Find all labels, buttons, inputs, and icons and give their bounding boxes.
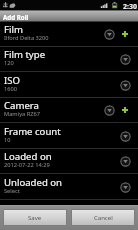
staticText: 1600 (4, 85, 18, 93)
staticText: 2012-07-22 14:29 (4, 161, 50, 169)
button[interactable]: Save (4, 210, 66, 225)
button[interactable]: Add new (122, 31, 128, 37)
button[interactable]: Open list (120, 182, 131, 193)
staticText: Film (4, 23, 23, 36)
staticText: Select (4, 187, 20, 195)
button[interactable]: Loaded on (0, 148, 138, 174)
button[interactable]: Film (0, 21, 138, 47)
button[interactable]: Frame count (0, 123, 138, 149)
staticText: Mamiya RZ67 (4, 110, 41, 118)
staticText: Film type (4, 48, 46, 61)
button[interactable]: Open list (120, 54, 131, 65)
button[interactable]: ISO (0, 72, 138, 98)
staticText: Loaded on (4, 150, 52, 163)
button[interactable]: Cancel (72, 210, 134, 225)
button[interactable]: Film type (0, 46, 138, 72)
button[interactable]: Open list (120, 156, 131, 167)
staticText: Save (28, 214, 42, 222)
button[interactable]: Camera (0, 97, 138, 123)
button[interactable]: Open list (120, 131, 131, 142)
button[interactable]: Open list (104, 105, 115, 116)
button[interactable]: Add new (122, 107, 128, 113)
button[interactable]: Open list (104, 29, 115, 40)
staticText: Ilford Delta 3200 (4, 34, 49, 42)
staticText: ISO (4, 74, 21, 87)
staticText: Unloaded on (4, 176, 63, 189)
staticText: Add Roll (3, 13, 29, 21)
staticText: 10 (4, 136, 11, 144)
staticText: Frame count (4, 125, 61, 138)
staticText: Camera (4, 99, 39, 112)
staticText: Cancel (94, 214, 113, 222)
button[interactable]: Unloaded on (0, 174, 138, 200)
button[interactable]: Open list (120, 80, 131, 91)
staticText: 120 (4, 59, 14, 67)
staticText: 2:30 (123, 2, 137, 12)
